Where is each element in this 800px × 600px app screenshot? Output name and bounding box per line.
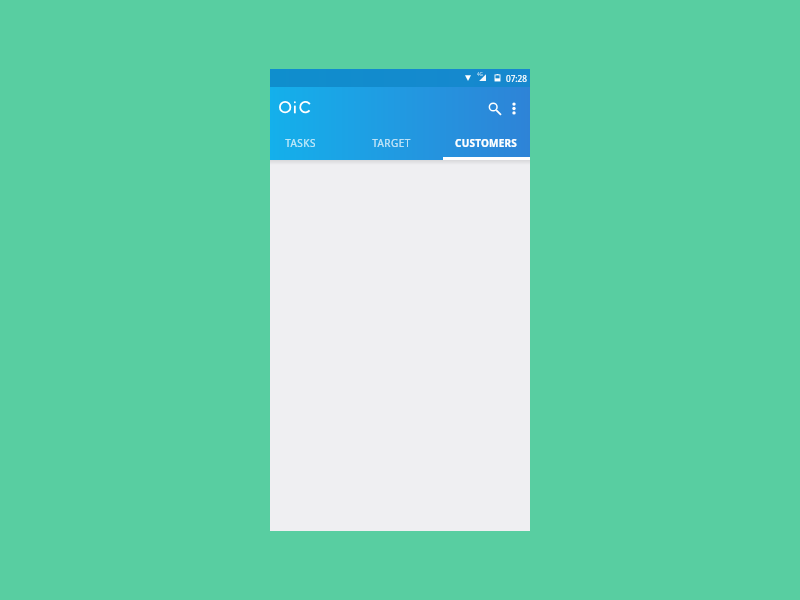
button[interactable]: TARGET bbox=[331, 132, 452, 160]
staticText: 07:28 bbox=[506, 73, 527, 84]
staticText: CUSTOMERS bbox=[455, 136, 517, 150]
staticText: TARGET bbox=[372, 136, 411, 150]
button[interactable]: TASKS bbox=[270, 132, 331, 160]
button[interactable]: Search bbox=[484, 98, 506, 120]
button[interactable]: CUSTOMERS bbox=[443, 132, 529, 160]
button[interactable]: More options bbox=[503, 97, 525, 119]
staticText: 4G bbox=[477, 71, 483, 77]
staticText: TASKS bbox=[285, 136, 316, 150]
